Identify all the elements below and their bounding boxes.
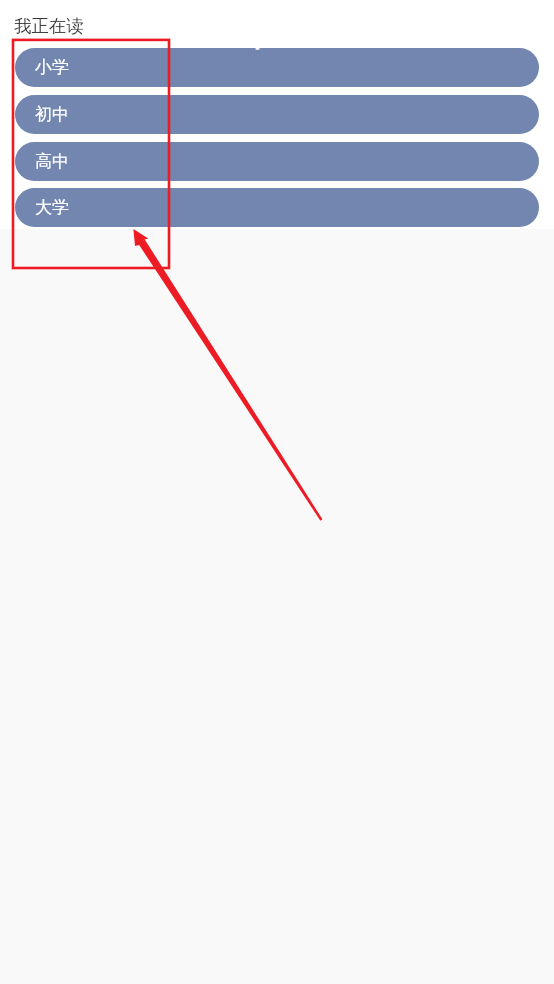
staticText: 初中 (35, 104, 69, 125)
other: Annotation highlighting the grade list (0, 0, 554, 984)
staticText: 高中 (35, 151, 69, 172)
staticText: 大学 (35, 197, 69, 218)
staticText: 小学 (35, 57, 69, 78)
button[interactable]: 初中 (15, 95, 539, 134)
button[interactable]: 大学 (15, 188, 539, 227)
staticText: 我正在读 (14, 15, 84, 37)
button[interactable]: 小学 (15, 48, 539, 87)
button[interactable]: 高中 (15, 142, 539, 181)
